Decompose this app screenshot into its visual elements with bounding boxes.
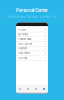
button[interactable]: Cart	[32, 85, 40, 93]
button[interactable]: Notifications	[16, 42, 48, 46]
staticText: Notifications	[18, 42, 32, 45]
staticText: Help center	[18, 52, 30, 55]
staticText: Account	[18, 28, 26, 31]
button[interactable]: Categories	[24, 85, 32, 93]
staticText: Personal Center	[16, 8, 48, 13]
staticText: Payment	[18, 47, 27, 50]
button[interactable]: Help center	[16, 51, 48, 56]
button[interactable]: Home	[16, 85, 24, 93]
staticText: Address book	[18, 38, 31, 40]
button[interactable]: Payment	[16, 46, 48, 51]
button[interactable]: Settings	[16, 56, 48, 60]
button[interactable]: My orders	[16, 32, 48, 37]
button[interactable]: Account	[16, 28, 48, 32]
staticText: Settings	[18, 56, 27, 59]
staticText: My orders	[18, 33, 28, 36]
staticText: Instructions for use, contact us	[7, 15, 57, 18]
button[interactable]: Address book	[16, 37, 48, 42]
button[interactable]: Me	[40, 85, 48, 93]
